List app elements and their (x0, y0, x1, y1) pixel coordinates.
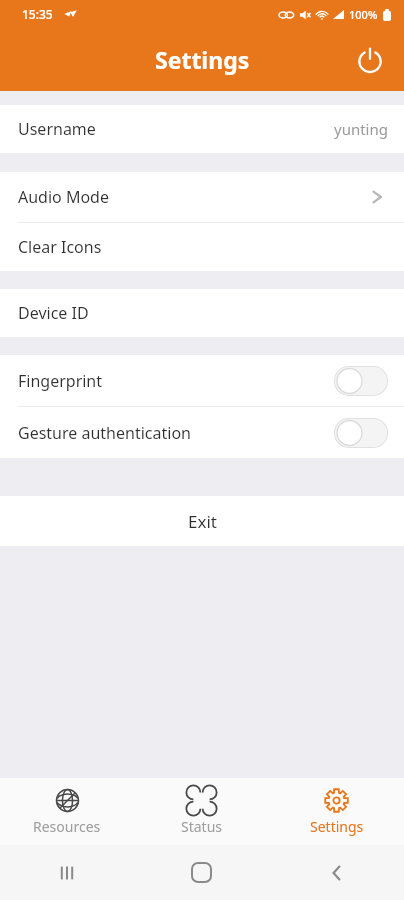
button[interactable]: Username (0, 105, 404, 153)
staticText: Gesture authentication (18, 422, 191, 444)
button[interactable]: Back (269, 845, 404, 900)
staticText: Settings (310, 817, 364, 836)
staticText: Exit (188, 510, 217, 533)
staticText: yunting (334, 119, 388, 139)
button[interactable]: Clear Icons (0, 223, 404, 271)
button[interactable]: Gesture authentication (0, 407, 404, 458)
button[interactable]: Settings (269, 778, 404, 845)
staticText: 15:35 (22, 6, 53, 22)
button[interactable]: Status (134, 778, 269, 845)
staticText: Username (18, 118, 96, 140)
button[interactable]: Exit (0, 496, 404, 546)
staticText: Audio Mode (18, 186, 109, 208)
staticText: Fingerprint (18, 370, 103, 392)
button[interactable]: Toggle off (334, 418, 388, 448)
button[interactable]: Home (134, 845, 269, 900)
staticText: Status (181, 817, 223, 836)
button[interactable]: Recents (0, 845, 134, 900)
staticText: Resources (33, 817, 101, 836)
button[interactable]: Toggle off (334, 366, 388, 396)
button[interactable]: Fingerprint (0, 355, 404, 406)
staticText: 100% (349, 7, 378, 22)
staticText: Clear Icons (18, 236, 102, 258)
button[interactable]: Power off (344, 34, 396, 86)
staticText: Settings (155, 44, 250, 75)
button[interactable]: Resources (0, 778, 134, 845)
staticText: Device ID (18, 302, 89, 324)
button[interactable]: Audio Mode (0, 172, 404, 222)
button[interactable]: Device ID (0, 289, 404, 337)
